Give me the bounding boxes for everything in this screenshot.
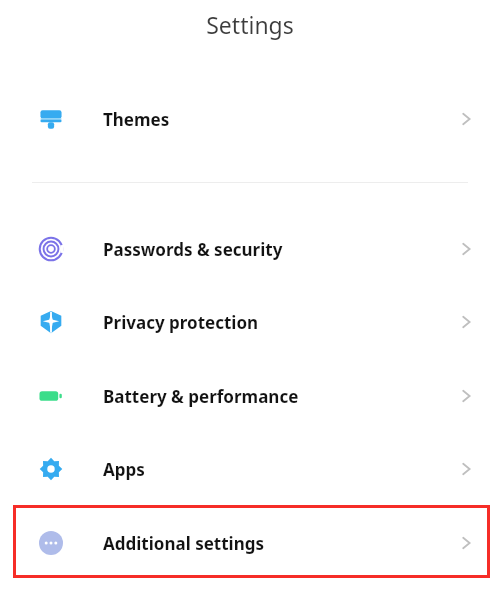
- button[interactable]: Battery and performance: [0, 359, 500, 433]
- staticText: Apps: [103, 458, 145, 481]
- other: Apps: [39, 457, 63, 481]
- other: Battery and performance: [39, 384, 63, 408]
- button[interactable]: Additional settings: [0, 506, 500, 580]
- button[interactable]: Themes: [0, 82, 500, 156]
- button[interactable]: Passwords and security: [0, 212, 500, 286]
- other: Themes: [39, 107, 63, 131]
- button[interactable]: Apps: [0, 432, 500, 506]
- staticText: Themes: [103, 108, 170, 131]
- button[interactable]: Privacy protection: [0, 285, 500, 359]
- other: Additional settings: [39, 531, 63, 555]
- staticText: Additional settings: [103, 532, 264, 555]
- other: Passwords and security: [39, 237, 63, 261]
- staticText: Passwords & security: [103, 238, 283, 261]
- staticText: Privacy protection: [103, 311, 259, 334]
- staticText: Battery & performance: [103, 385, 299, 408]
- other: Privacy protection: [39, 310, 63, 334]
- staticText: Settings: [206, 9, 294, 40]
